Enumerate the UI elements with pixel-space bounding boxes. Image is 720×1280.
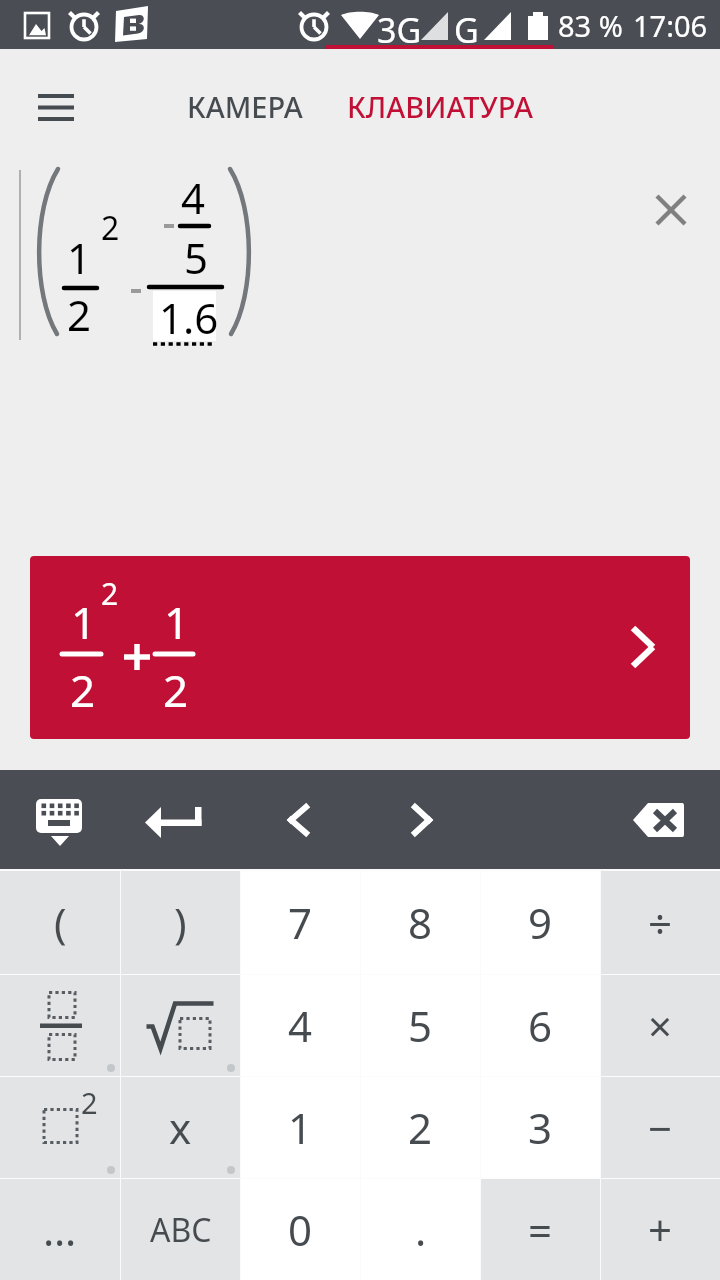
staticText: ×: [648, 997, 673, 1054]
staticText: 1: [67, 229, 92, 286]
staticText: ABC: [150, 1208, 212, 1252]
button[interactable]: Enter: [130, 780, 230, 860]
staticText: 2: [67, 286, 92, 343]
staticText: КЛАВИАТУРА: [347, 87, 533, 126]
staticText: 2: [81, 1083, 98, 1122]
button[interactable]: 0: [241, 1179, 360, 1280]
button[interactable]: ): [121, 871, 240, 974]
button[interactable]: 6: [481, 975, 600, 1076]
button[interactable]: Menu: [14, 65, 98, 149]
staticText: КАМЕРА: [187, 87, 303, 126]
button[interactable]: 8: [361, 871, 480, 974]
staticText: 2: [101, 206, 120, 250]
button[interactable]: Fraction: [0, 975, 120, 1076]
button[interactable]: +: [601, 1179, 720, 1280]
button[interactable]: КАМЕРА: [160, 66, 330, 146]
button[interactable]: Backspace: [600, 780, 700, 860]
staticText: x: [169, 1099, 192, 1156]
staticText: =: [528, 1201, 553, 1258]
button[interactable]: 1: [241, 1077, 360, 1178]
button[interactable]: Clear: [637, 176, 705, 244]
button[interactable]: 5: [361, 975, 480, 1076]
staticText: 8: [408, 894, 433, 951]
button[interactable]: Power of two: [0, 1077, 120, 1178]
staticText: 6: [528, 997, 553, 1054]
button[interactable]: Hide keyboard: [10, 780, 110, 860]
button[interactable]: Move cursor right: [370, 780, 470, 860]
button[interactable]: 9: [481, 871, 600, 974]
staticText: G: [454, 7, 479, 53]
staticText: +: [648, 1201, 673, 1258]
staticText: 0: [288, 1201, 313, 1258]
button[interactable]: 2: [361, 1077, 480, 1178]
staticText: 5: [184, 229, 209, 286]
staticText: (: [54, 894, 67, 951]
staticText: 1.6: [159, 289, 219, 346]
button[interactable]: ×: [601, 975, 720, 1076]
staticText: ÷: [648, 894, 673, 951]
button[interactable]: Move cursor left: [250, 780, 350, 860]
button[interactable]: −: [601, 1077, 720, 1178]
button[interactable]: (: [0, 871, 120, 974]
button[interactable]: …: [0, 1179, 120, 1280]
button[interactable]: ÷: [601, 871, 720, 974]
staticText: 4: [181, 169, 206, 226]
button[interactable]: 4: [241, 975, 360, 1076]
button[interactable]: ABC: [121, 1179, 240, 1280]
staticText: 7: [288, 894, 313, 951]
staticText: 2: [101, 573, 119, 614]
button[interactable]: x: [121, 1077, 240, 1178]
button[interactable]: 3: [481, 1077, 600, 1178]
staticText: 2: [408, 1099, 433, 1156]
staticText: 2: [163, 660, 189, 720]
staticText: 1: [288, 1099, 313, 1156]
staticText: 5: [408, 997, 433, 1054]
staticText: 4: [288, 997, 313, 1054]
staticText: 2: [70, 660, 96, 720]
staticText: 17:06: [633, 6, 708, 45]
button[interactable]: 7: [241, 871, 360, 974]
button[interactable]: Square root: [121, 975, 240, 1076]
staticText: −: [648, 1099, 673, 1156]
staticText: ): [174, 894, 187, 951]
button[interactable]: КЛАВИАТУРА: [330, 66, 550, 146]
staticText: .: [415, 1201, 427, 1258]
staticText: 1: [71, 592, 97, 652]
button[interactable]: 1: [30, 556, 690, 739]
staticText: 9: [528, 894, 553, 951]
staticText: 83 %: [558, 6, 623, 45]
staticText: 1: [164, 592, 190, 652]
staticText: 3G: [377, 7, 422, 53]
button[interactable]: =: [481, 1179, 600, 1280]
staticText: …: [43, 1201, 77, 1258]
staticText: 3: [528, 1099, 553, 1156]
button[interactable]: .: [361, 1179, 480, 1280]
